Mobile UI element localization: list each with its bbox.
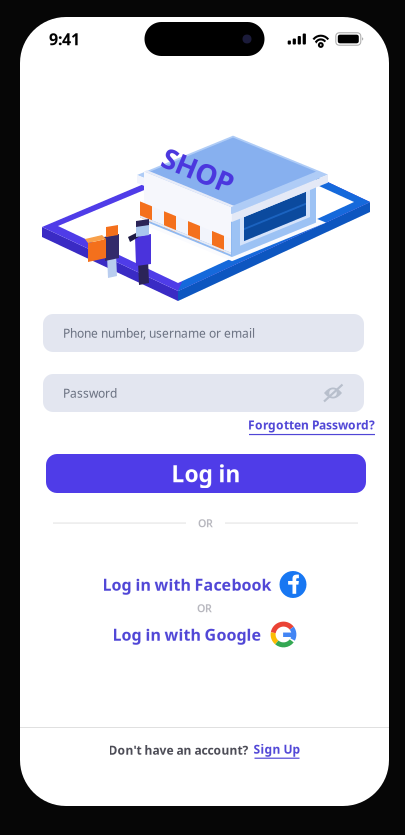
button[interactable]: Password xyxy=(43,374,364,412)
staticText: Don't have an account? xyxy=(108,742,248,758)
staticText: Log in with Google xyxy=(112,624,261,645)
button[interactable]: Forgotten Password? xyxy=(248,417,375,435)
button[interactable]: Phone number, username or email xyxy=(43,314,364,352)
button[interactable]: Log in with Google xyxy=(20,621,389,648)
staticText: Phone number, username or email xyxy=(63,325,255,341)
button[interactable]: Sign Up xyxy=(253,741,300,759)
staticText: OR xyxy=(198,516,213,530)
staticText: Log in with Facebook xyxy=(102,574,271,595)
button[interactable]: Log in xyxy=(46,454,366,493)
staticText: OR xyxy=(197,601,212,615)
staticText: Log in xyxy=(171,458,240,488)
staticText: Sign Up xyxy=(253,741,300,757)
staticText: SHOP xyxy=(160,151,235,189)
staticText: Forgotten Password? xyxy=(248,417,375,433)
button[interactable]: Log in with Facebook xyxy=(20,571,389,598)
staticText: 9:41 xyxy=(49,28,80,50)
staticText: Password xyxy=(63,385,117,401)
